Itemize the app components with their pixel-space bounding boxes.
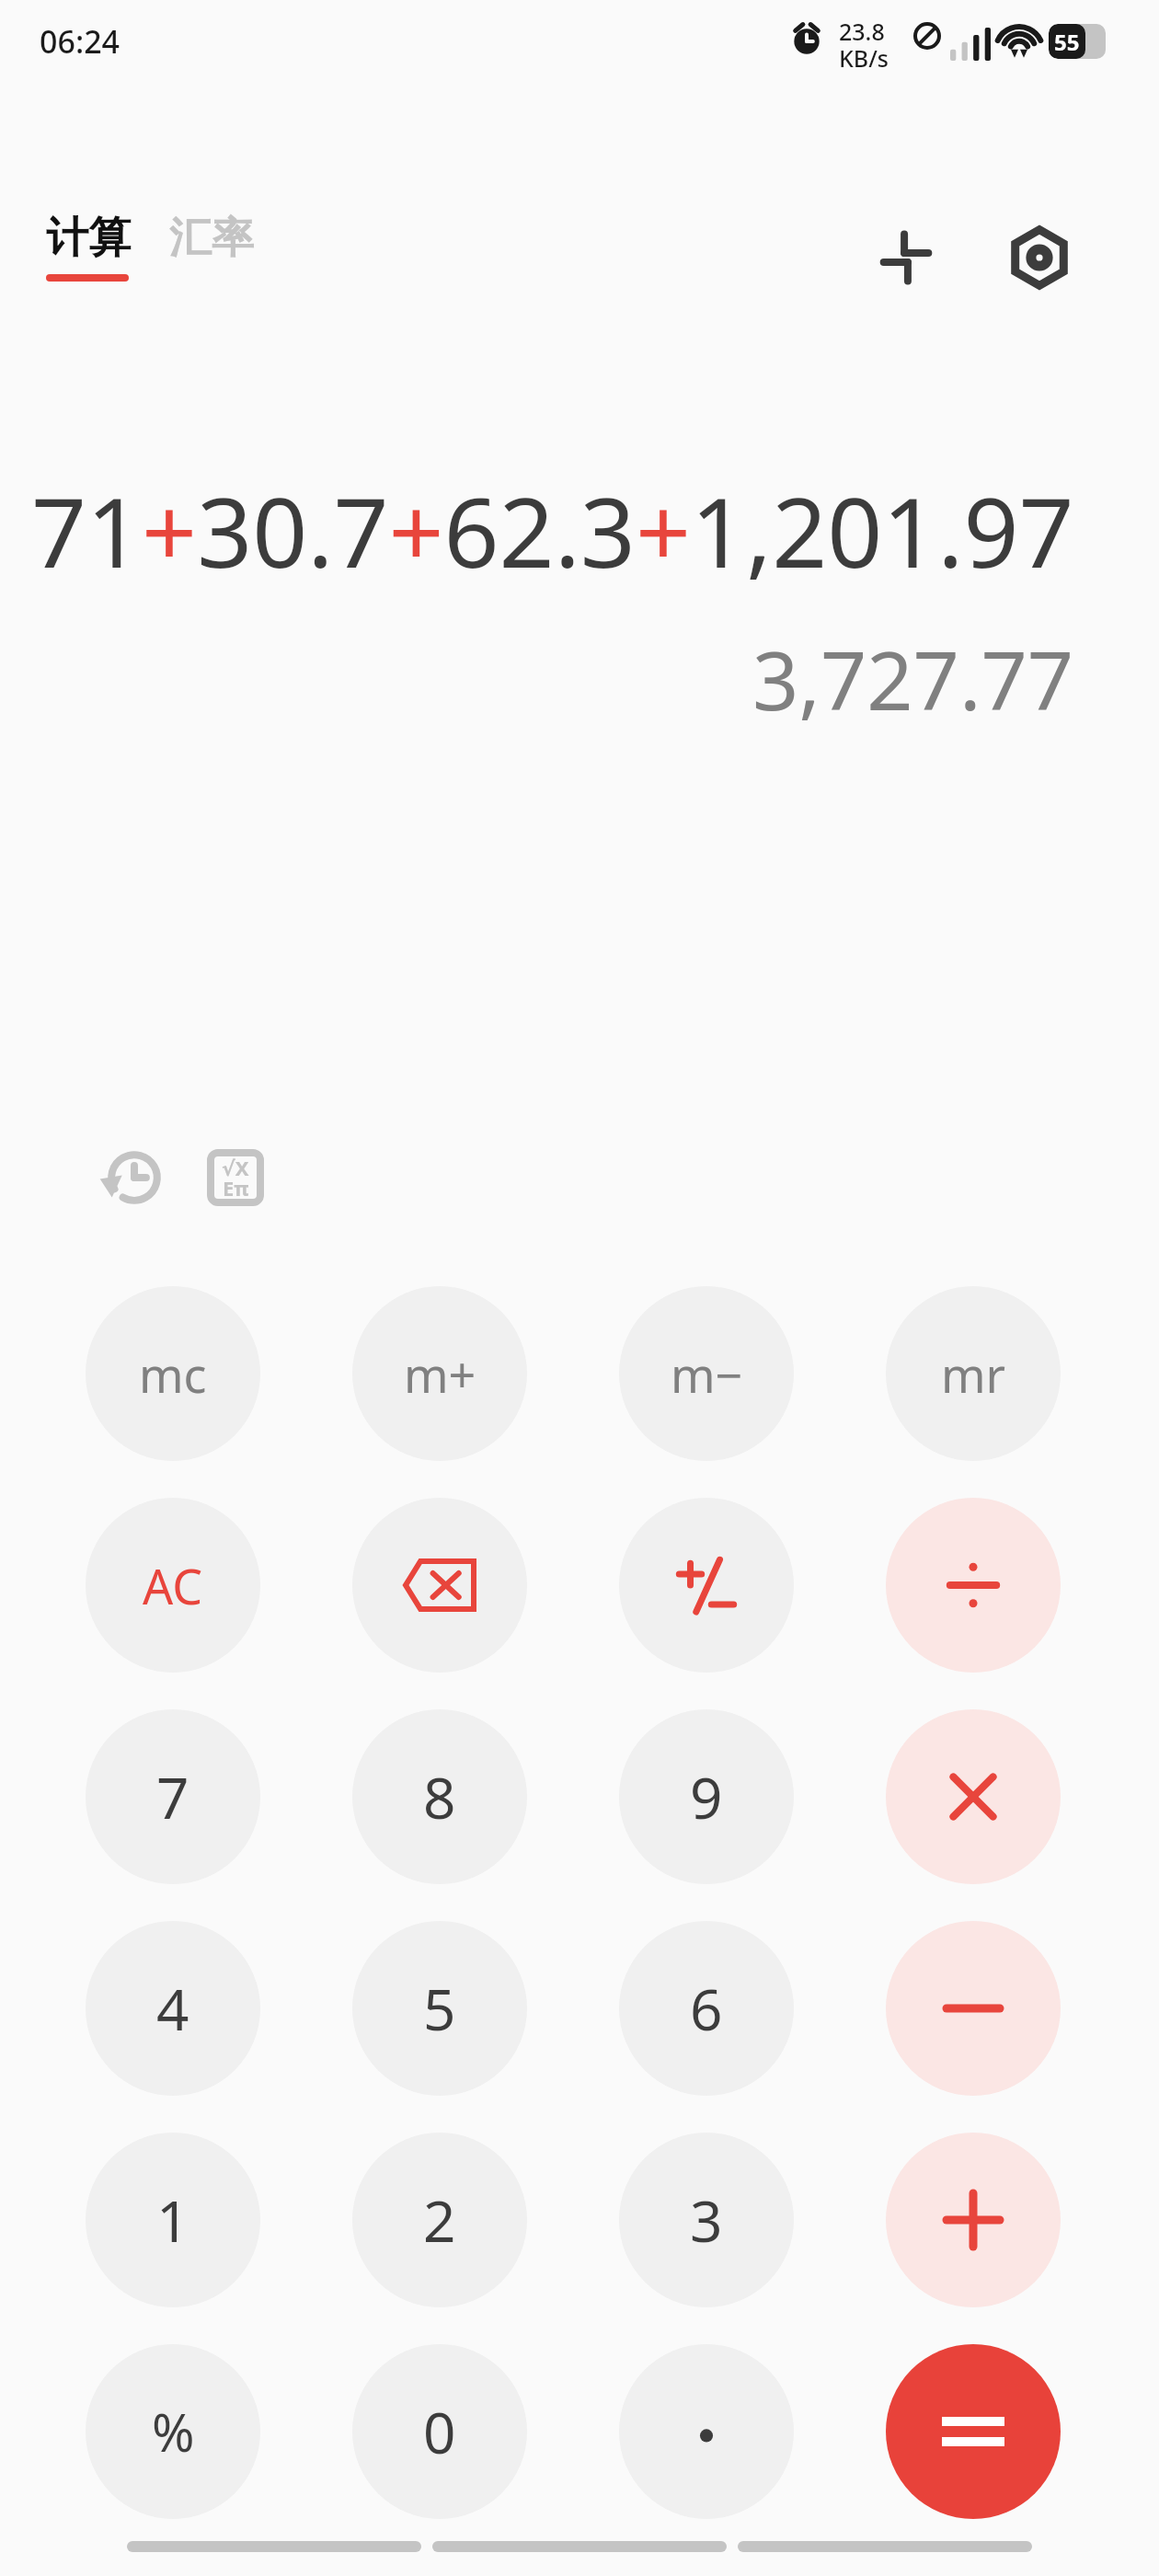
button[interactable]: Plus xyxy=(886,2133,1061,2307)
button[interactable]: Divide xyxy=(886,1498,1061,1673)
button[interactable]: Equals xyxy=(886,2344,1061,2519)
staticText: 7 xyxy=(156,1758,189,1835)
button[interactable]: Backspace xyxy=(352,1498,527,1673)
button[interactable]: % xyxy=(86,2344,260,2519)
button[interactable]: mr xyxy=(886,1286,1061,1461)
staticText: mc xyxy=(139,1341,207,1407)
staticText: 6 xyxy=(690,1970,723,2047)
staticText: % xyxy=(152,2397,195,2467)
staticText: 55 xyxy=(1054,27,1080,57)
button[interactable]: m+ xyxy=(352,1286,527,1461)
button[interactable]: 5 xyxy=(352,1921,527,2096)
button[interactable]: Decimal point xyxy=(619,2344,794,2519)
staticText: Eπ xyxy=(223,1174,249,1202)
button[interactable]: mc xyxy=(86,1286,260,1461)
button[interactable]: Expand keypad xyxy=(855,207,957,308)
staticText: 1 xyxy=(156,2181,189,2259)
button[interactable]: 0 xyxy=(352,2344,527,2519)
staticText: 4 xyxy=(156,1970,189,2047)
button[interactable]: Settings xyxy=(989,207,1090,308)
staticText: mr xyxy=(941,1341,1006,1407)
staticText: 0 xyxy=(423,2393,456,2470)
button[interactable]: 3 xyxy=(619,2133,794,2307)
staticText: 8 xyxy=(423,1758,456,1835)
staticText: 9 xyxy=(690,1758,723,1835)
button[interactable]: Recents xyxy=(738,2541,1032,2552)
button[interactable]: 9 xyxy=(619,1709,794,1884)
staticText: 2 xyxy=(423,2181,456,2259)
button[interactable]: Back xyxy=(127,2541,421,2552)
button[interactable]: 4 xyxy=(86,1921,260,2096)
button[interactable]: 计算 xyxy=(42,212,134,282)
staticText: m− xyxy=(671,1341,743,1407)
button[interactable]: History xyxy=(90,1133,178,1222)
staticText: AC xyxy=(143,1553,203,1618)
staticText: 计算 xyxy=(46,212,131,265)
button[interactable]: 7 xyxy=(86,1709,260,1884)
staticText: KB/s xyxy=(839,42,889,74)
button[interactable]: 1 xyxy=(86,2133,260,2307)
staticText: 23.8 xyxy=(839,16,885,47)
button[interactable]: Scientific xyxy=(191,1133,280,1222)
button[interactable]: m− xyxy=(619,1286,794,1461)
button[interactable]: 汇率 xyxy=(166,212,258,265)
staticText: 5 xyxy=(423,1970,456,2047)
staticText: 3,727.77 xyxy=(752,624,1074,734)
button[interactable]: AC xyxy=(86,1498,260,1673)
staticText: √X xyxy=(222,1154,249,1181)
button[interactable]: 6 xyxy=(619,1921,794,2096)
staticText: 06:24 xyxy=(40,20,120,63)
button[interactable]: Minus xyxy=(886,1921,1061,2096)
button[interactable]: Plus minus sign xyxy=(619,1498,794,1673)
staticText: 71+30.7+62.3+1,201.97 xyxy=(31,465,1074,596)
button[interactable]: 2 xyxy=(352,2133,527,2307)
button[interactable]: Home xyxy=(432,2541,727,2552)
staticText: m+ xyxy=(404,1341,476,1407)
button[interactable]: 8 xyxy=(352,1709,527,1884)
staticText: 3 xyxy=(690,2181,723,2259)
staticText: 汇率 xyxy=(169,212,254,265)
button[interactable]: Multiply xyxy=(886,1709,1061,1884)
